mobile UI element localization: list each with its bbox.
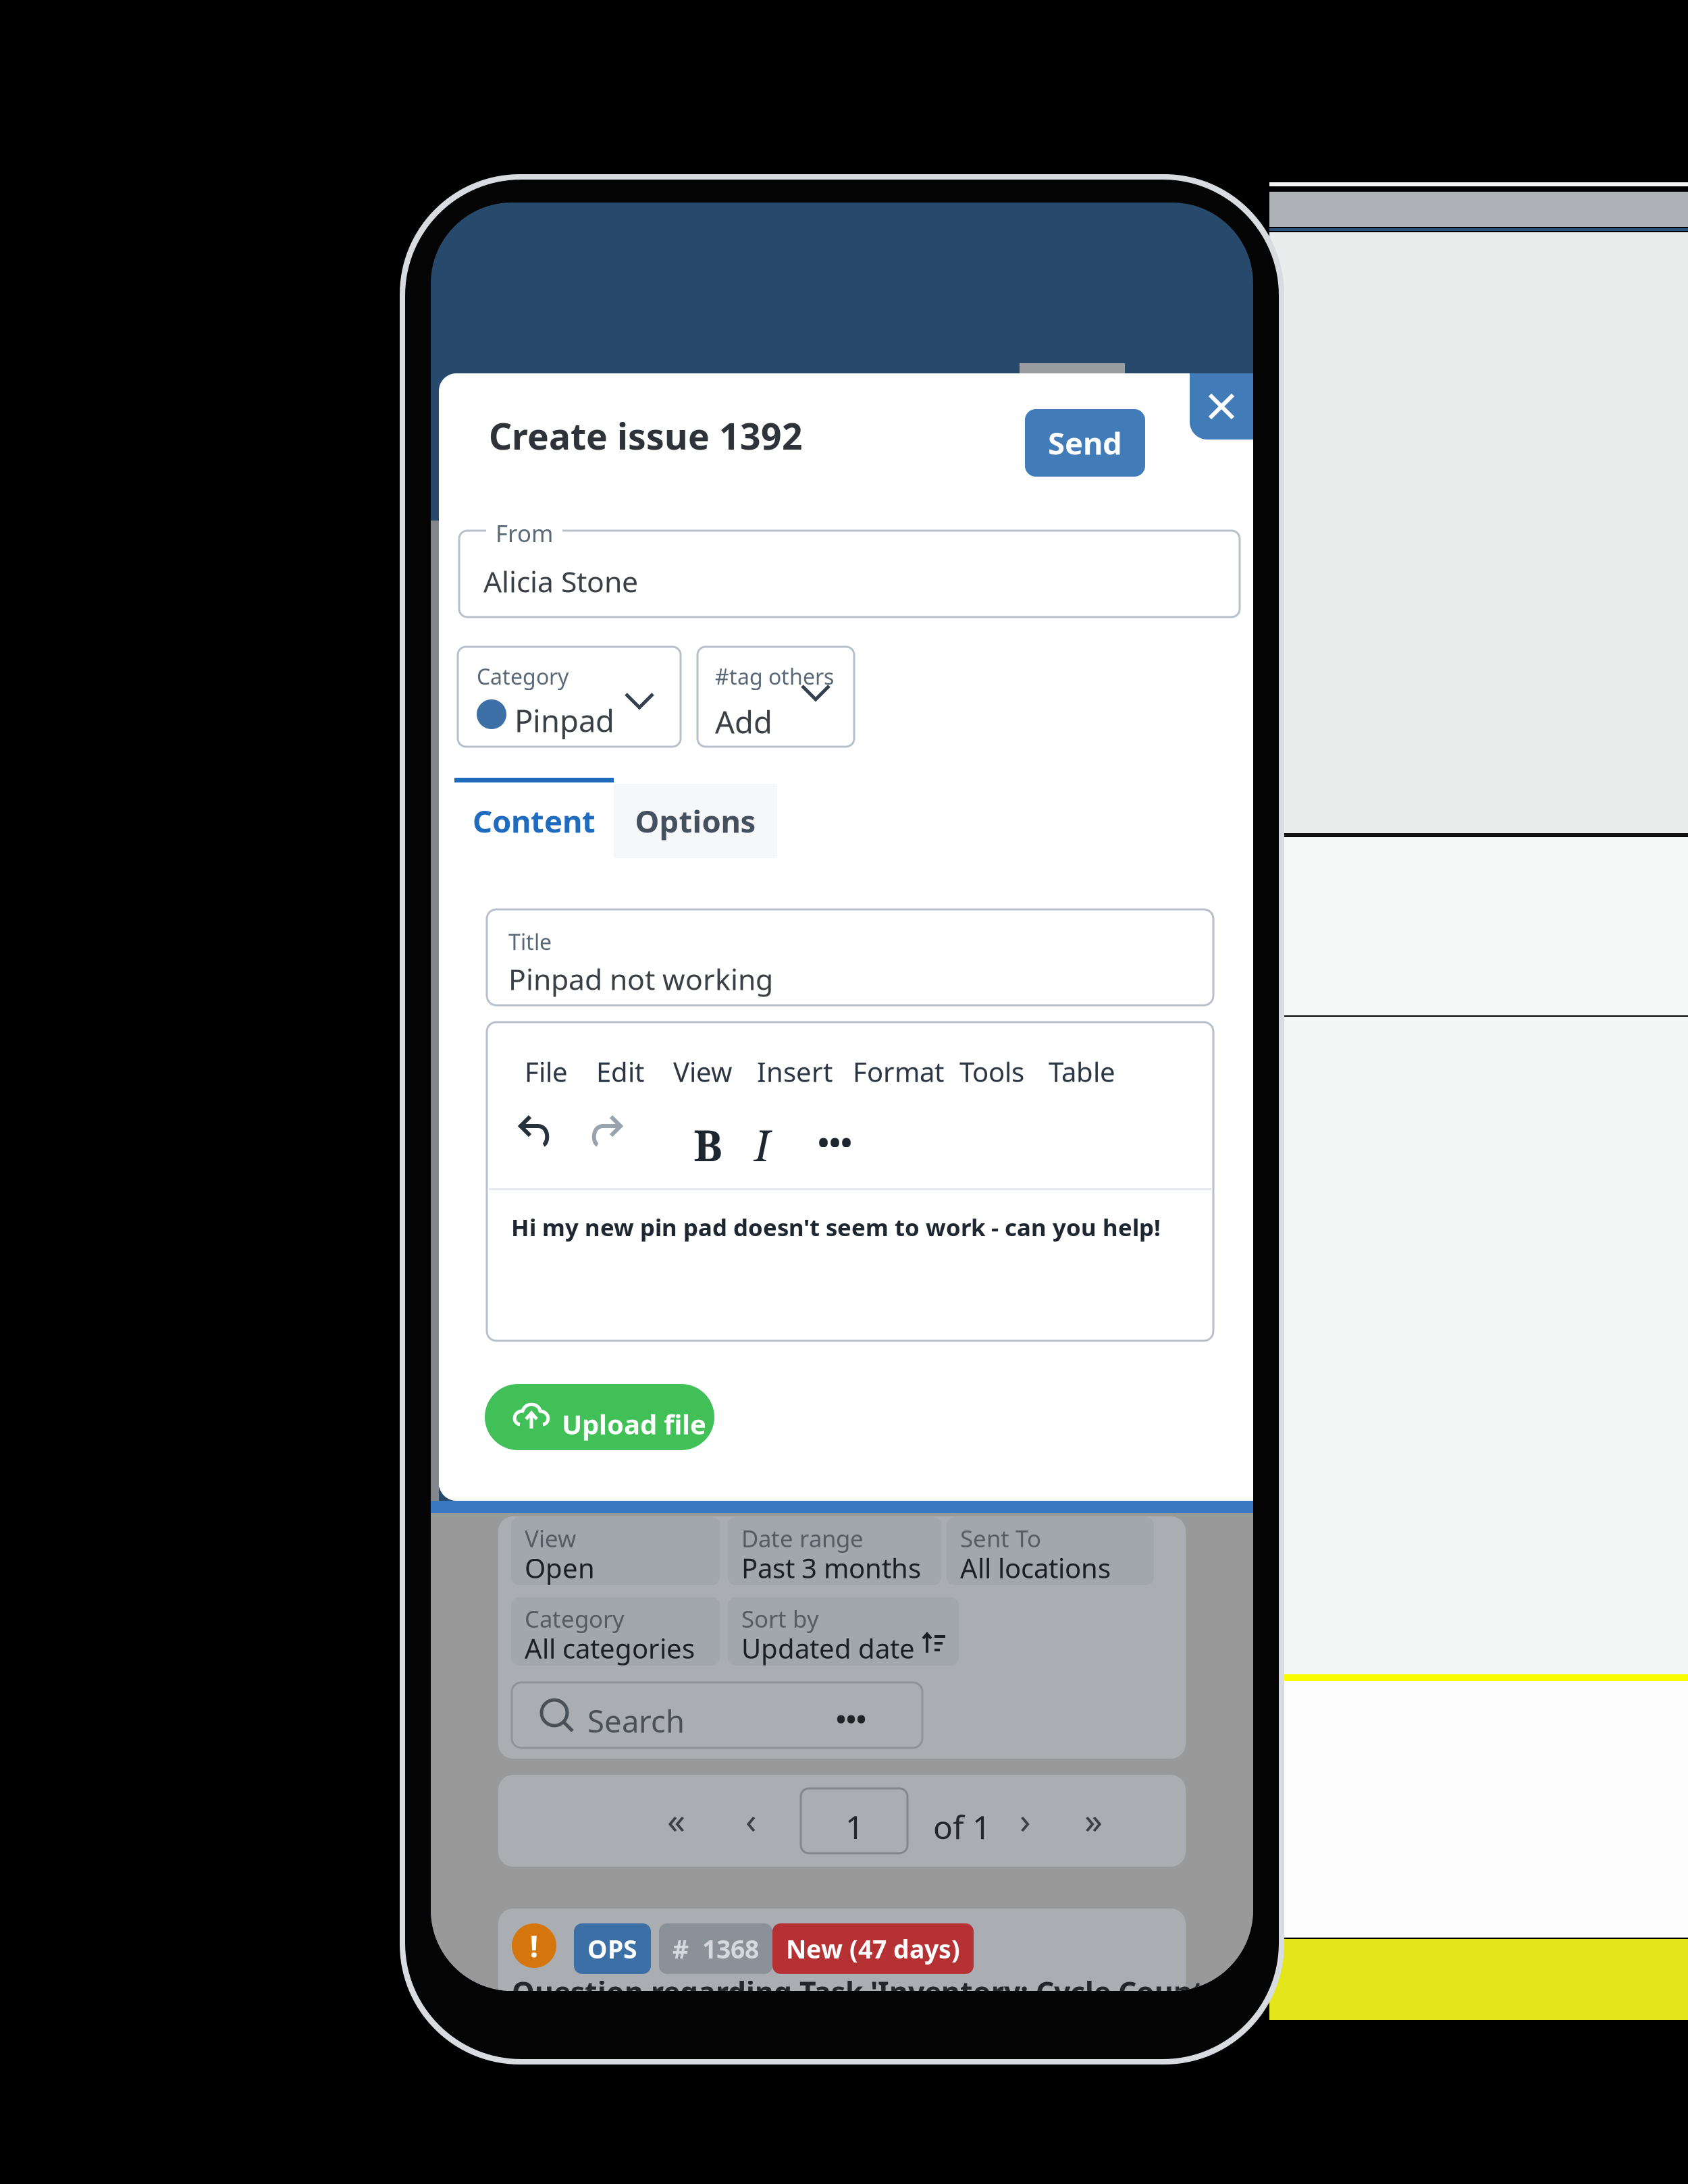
staticText: Open <box>525 1549 595 1586</box>
staticText: Options <box>635 800 756 842</box>
staticText: Updated date <box>741 1630 915 1667</box>
staticText: B <box>693 1115 722 1174</box>
staticText: From <box>496 517 553 549</box>
staticText: OPS <box>587 1932 637 1966</box>
staticText: I <box>754 1115 770 1174</box>
button[interactable]: Search <box>512 1682 922 1748</box>
staticText: « <box>667 1795 685 1844</box>
button[interactable]: Upload file <box>485 1384 714 1450</box>
staticText: All locations <box>960 1549 1111 1586</box>
staticText: File <box>525 1053 568 1090</box>
staticText: Hi my new pin pad doesn't seem to work -… <box>511 1211 1161 1243</box>
button[interactable]: Edit <box>596 1053 644 1090</box>
button[interactable]: Category <box>511 1597 720 1666</box>
button[interactable]: Sort by <box>728 1597 959 1666</box>
button[interactable]: Table <box>1049 1053 1115 1090</box>
staticText: Edit <box>596 1053 644 1090</box>
staticText: › <box>1020 1795 1031 1844</box>
staticText: ••• <box>818 1121 852 1162</box>
staticText: Category <box>477 662 569 691</box>
staticText: ! <box>530 1925 538 1966</box>
button[interactable]: File <box>525 1053 568 1090</box>
staticText: Question regarding Task 'Inventory: Cycl… <box>512 1972 1227 2011</box>
staticText: Insert <box>757 1053 833 1090</box>
staticText: Past 3 months <box>741 1549 921 1586</box>
staticText: Sort by <box>741 1603 819 1635</box>
staticText: Pinpad not working <box>508 959 773 999</box>
staticText: Format <box>853 1053 944 1090</box>
button[interactable]: View <box>673 1053 732 1090</box>
button[interactable]: Options <box>614 784 777 858</box>
staticText: Pinpad <box>515 699 614 741</box>
staticText: Table <box>1049 1053 1115 1090</box>
staticText: Sent To <box>960 1522 1041 1554</box>
staticText: Search <box>587 1700 685 1742</box>
staticText: » <box>1084 1795 1103 1844</box>
button[interactable]: Date range <box>728 1517 941 1585</box>
staticText: Send <box>1048 422 1122 464</box>
staticText: All categories <box>525 1630 695 1667</box>
button[interactable]: Tools <box>959 1053 1024 1090</box>
staticText: Add <box>715 701 772 742</box>
button[interactable]: Format <box>853 1053 944 1090</box>
button[interactable]: Close <box>1190 373 1253 440</box>
staticText: #tag others <box>715 662 834 691</box>
staticText: Category <box>525 1603 625 1635</box>
button[interactable]: Send <box>1025 409 1145 477</box>
staticText: ‹ <box>745 1795 757 1844</box>
staticText: Alicia Stone <box>483 562 638 601</box>
staticText: Create issue 1392 <box>489 411 803 460</box>
button[interactable]: Content <box>454 784 614 858</box>
staticText: of 1 <box>933 1805 991 1849</box>
staticText: Date range <box>741 1522 864 1554</box>
staticText: View <box>673 1053 732 1090</box>
button[interactable]: Sent To <box>947 1517 1154 1585</box>
staticText: Upload file <box>562 1406 706 1442</box>
staticText: New (47 days) <box>786 1932 960 1966</box>
staticText: Title <box>508 927 552 956</box>
staticText: View <box>525 1522 576 1554</box>
staticText: ••• <box>836 1700 866 1737</box>
staticText: 1 <box>845 1805 864 1849</box>
button[interactable]: View <box>511 1517 720 1585</box>
staticText: Content <box>473 800 596 842</box>
staticText: # 1368 <box>672 1932 759 1966</box>
button[interactable]: Insert <box>757 1053 833 1090</box>
staticText: Tools <box>959 1053 1024 1090</box>
